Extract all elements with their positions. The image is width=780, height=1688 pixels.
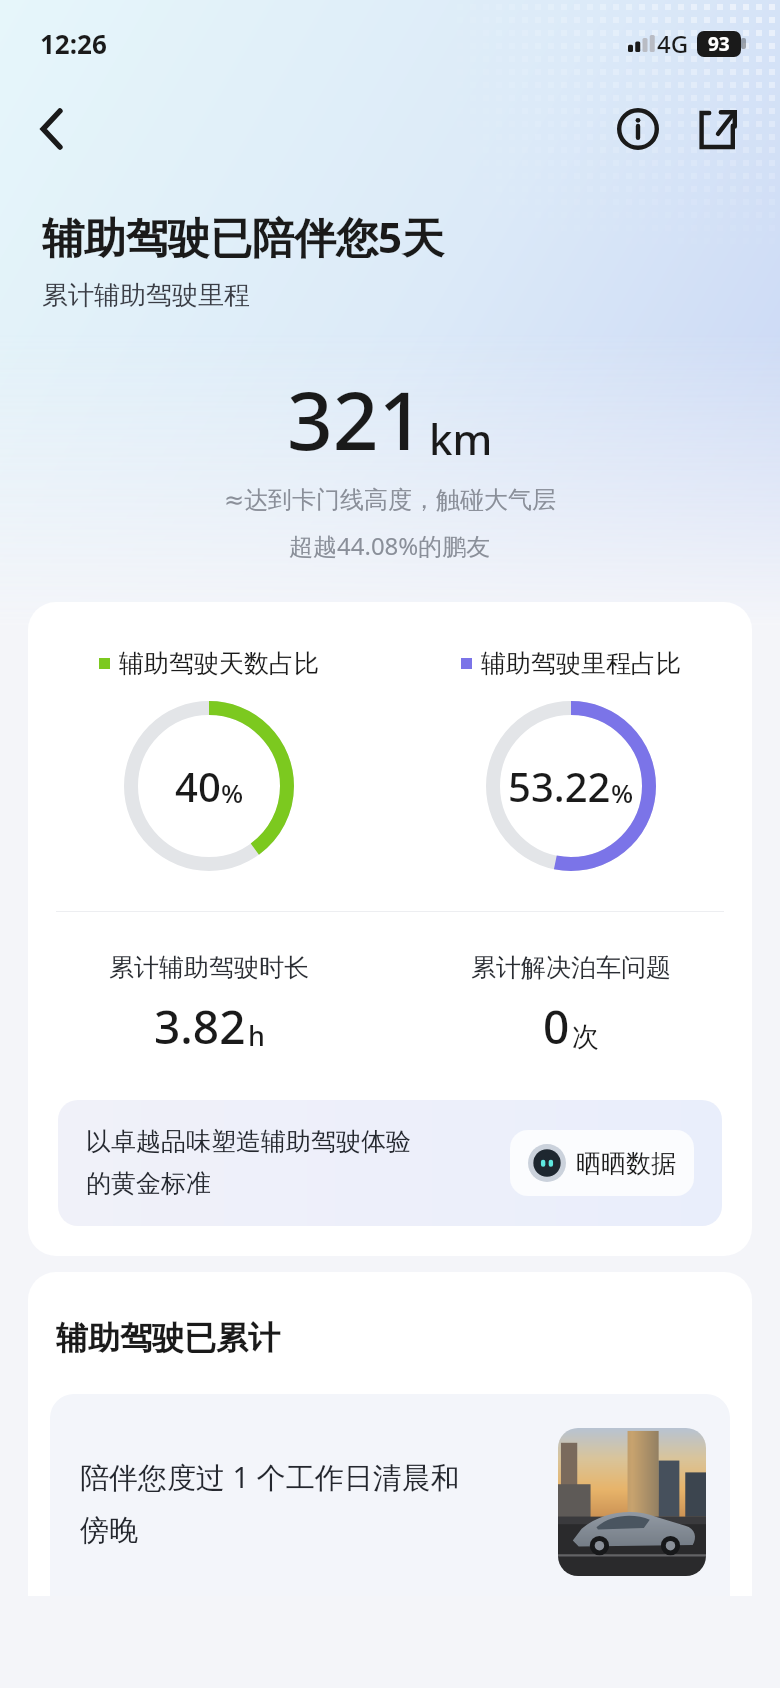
staticText: 53.22: [508, 759, 611, 813]
staticText: 40: [175, 759, 221, 813]
staticText: 超越44.08%的鹏友: [289, 529, 491, 562]
staticText: 次: [572, 1020, 599, 1054]
staticText: %: [221, 775, 244, 810]
staticText: 3.82: [154, 995, 246, 1058]
staticText: 以卓越品味塑造辅助驾驶体验 的黄金标准: [86, 1126, 496, 1200]
staticText: km: [429, 410, 493, 467]
staticText: %: [611, 775, 634, 810]
button[interactable]: Info: [610, 101, 666, 157]
button[interactable]: Share: [688, 101, 744, 157]
staticText: ≈达到卡门线高度，触碰大气层: [224, 485, 557, 515]
staticText: 累计辅助驾驶时长: [109, 952, 309, 983]
staticText: h: [248, 1017, 265, 1054]
button[interactable]: Back: [24, 101, 80, 157]
staticText: 0: [543, 995, 570, 1058]
staticText: 辅助驾驶天数占比: [119, 648, 319, 679]
staticText: 累计解决泊车问题: [471, 952, 671, 983]
staticText: 辅助驾驶已陪伴您5天: [42, 208, 445, 265]
staticText: 4G: [657, 27, 689, 60]
staticText: 累计辅助驾驶里程: [42, 279, 250, 312]
staticText: 93: [708, 31, 730, 57]
staticText: 陪伴您度过 1 个工作日清晨和 傍晚: [80, 1457, 544, 1548]
button[interactable]: 晒晒数据: [510, 1130, 694, 1196]
staticText: 辅助驾驶里程占比: [481, 648, 681, 679]
staticText: 12:26: [40, 26, 107, 61]
staticText: 晒晒数据: [576, 1148, 676, 1179]
staticText: 辅助驾驶已累计: [56, 1318, 280, 1358]
staticText: 321: [287, 364, 425, 473]
button[interactable]: 陪伴您度过 1 个工作日清晨和 傍晚: [50, 1394, 730, 1596]
